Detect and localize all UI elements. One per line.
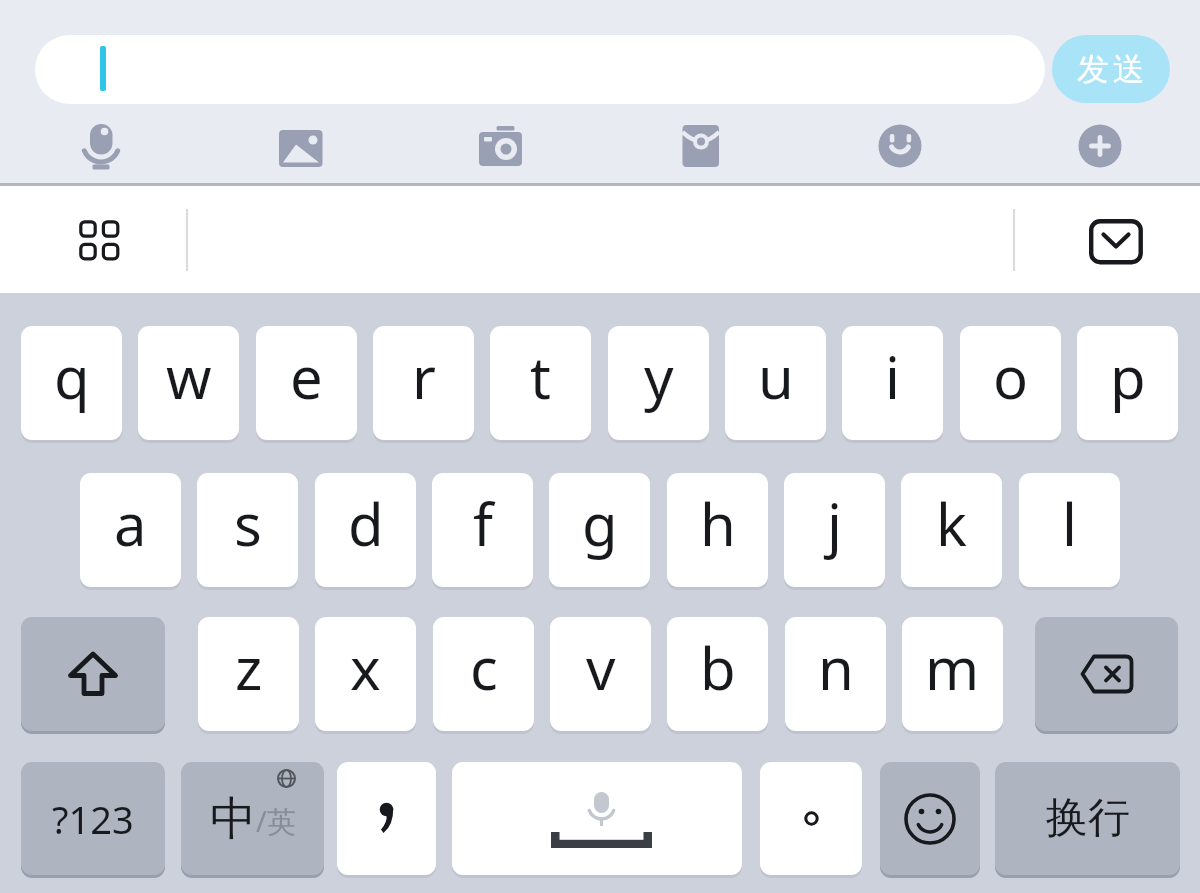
staticText: c: [470, 628, 498, 707]
staticText: i: [885, 337, 900, 416]
button[interactable]: b: [667, 617, 768, 731]
staticText: h: [700, 484, 736, 563]
button[interactable]: v: [550, 617, 651, 731]
button[interactable]: c: [433, 617, 534, 731]
button[interactable]: g: [549, 473, 650, 587]
staticText: e: [290, 337, 323, 416]
button[interactable]: m: [902, 617, 1003, 731]
button[interactable]: [880, 762, 980, 875]
button[interactable]: n: [785, 617, 886, 731]
button[interactable]: y: [608, 326, 709, 440]
staticText: w: [166, 337, 212, 416]
staticText: v: [586, 628, 616, 707]
button[interactable]: f: [432, 473, 533, 587]
staticText: n: [818, 628, 854, 707]
button[interactable]: a: [80, 473, 181, 587]
staticText: r: [412, 337, 436, 416]
button[interactable]: [681, 123, 721, 169]
button[interactable]: [79, 120, 123, 172]
button[interactable]: q: [21, 326, 122, 440]
button[interactable]: [477, 122, 523, 168]
staticText: a: [114, 484, 147, 563]
button[interactable]: [760, 762, 862, 875]
staticText: j: [827, 484, 842, 563]
staticText: o: [993, 337, 1029, 416]
button[interactable]: [21, 617, 165, 731]
staticText: u: [758, 337, 794, 416]
button[interactable]: s: [197, 473, 298, 587]
button[interactable]: [79, 220, 123, 264]
button[interactable]: h: [667, 473, 768, 587]
staticText: d: [348, 484, 384, 563]
staticText: q: [54, 337, 90, 416]
button[interactable]: e: [256, 326, 357, 440]
button[interactable]: i: [842, 326, 943, 440]
staticText: s: [234, 484, 262, 563]
staticText: /英: [256, 801, 296, 841]
staticText: g: [582, 484, 618, 563]
button[interactable]: r: [373, 326, 474, 440]
button[interactable]: [878, 124, 922, 168]
button[interactable]: [1089, 219, 1143, 265]
staticText: 换行: [1046, 792, 1130, 845]
staticText: z: [235, 628, 263, 707]
staticText: y: [644, 337, 674, 416]
button[interactable]: l: [1019, 473, 1120, 587]
button[interactable]: [278, 128, 324, 170]
button[interactable]: 换行: [995, 762, 1180, 875]
staticText: f: [473, 484, 493, 563]
button[interactable]: w: [138, 326, 239, 440]
button[interactable]: x: [315, 617, 416, 731]
button[interactable]: [337, 762, 436, 875]
button[interactable]: p: [1077, 326, 1178, 440]
button[interactable]: [452, 762, 742, 875]
staticText: 发送: [1075, 49, 1147, 89]
button[interactable]: [1078, 124, 1122, 168]
button[interactable]: o: [960, 326, 1061, 440]
staticText: b: [700, 628, 736, 707]
button[interactable]: z: [198, 617, 299, 731]
button[interactable]: d: [315, 473, 416, 587]
staticText: x: [350, 628, 381, 707]
staticText: k: [936, 484, 967, 563]
button[interactable]: [1035, 617, 1178, 731]
staticText: l: [1062, 484, 1077, 563]
staticText: ?123: [52, 793, 134, 845]
staticText: m: [925, 628, 980, 707]
button[interactable]: ?123: [21, 762, 165, 875]
staticText: 中: [210, 790, 256, 848]
button[interactable]: k: [901, 473, 1002, 587]
staticText: t: [530, 337, 551, 416]
button[interactable]: t: [490, 326, 591, 440]
button[interactable]: j: [784, 473, 885, 587]
staticText: p: [1110, 337, 1146, 416]
button[interactable]: u: [725, 326, 826, 440]
button[interactable]: 发送: [1052, 35, 1170, 103]
button[interactable]: 中: [181, 762, 324, 875]
button[interactable]: [35, 35, 1045, 104]
